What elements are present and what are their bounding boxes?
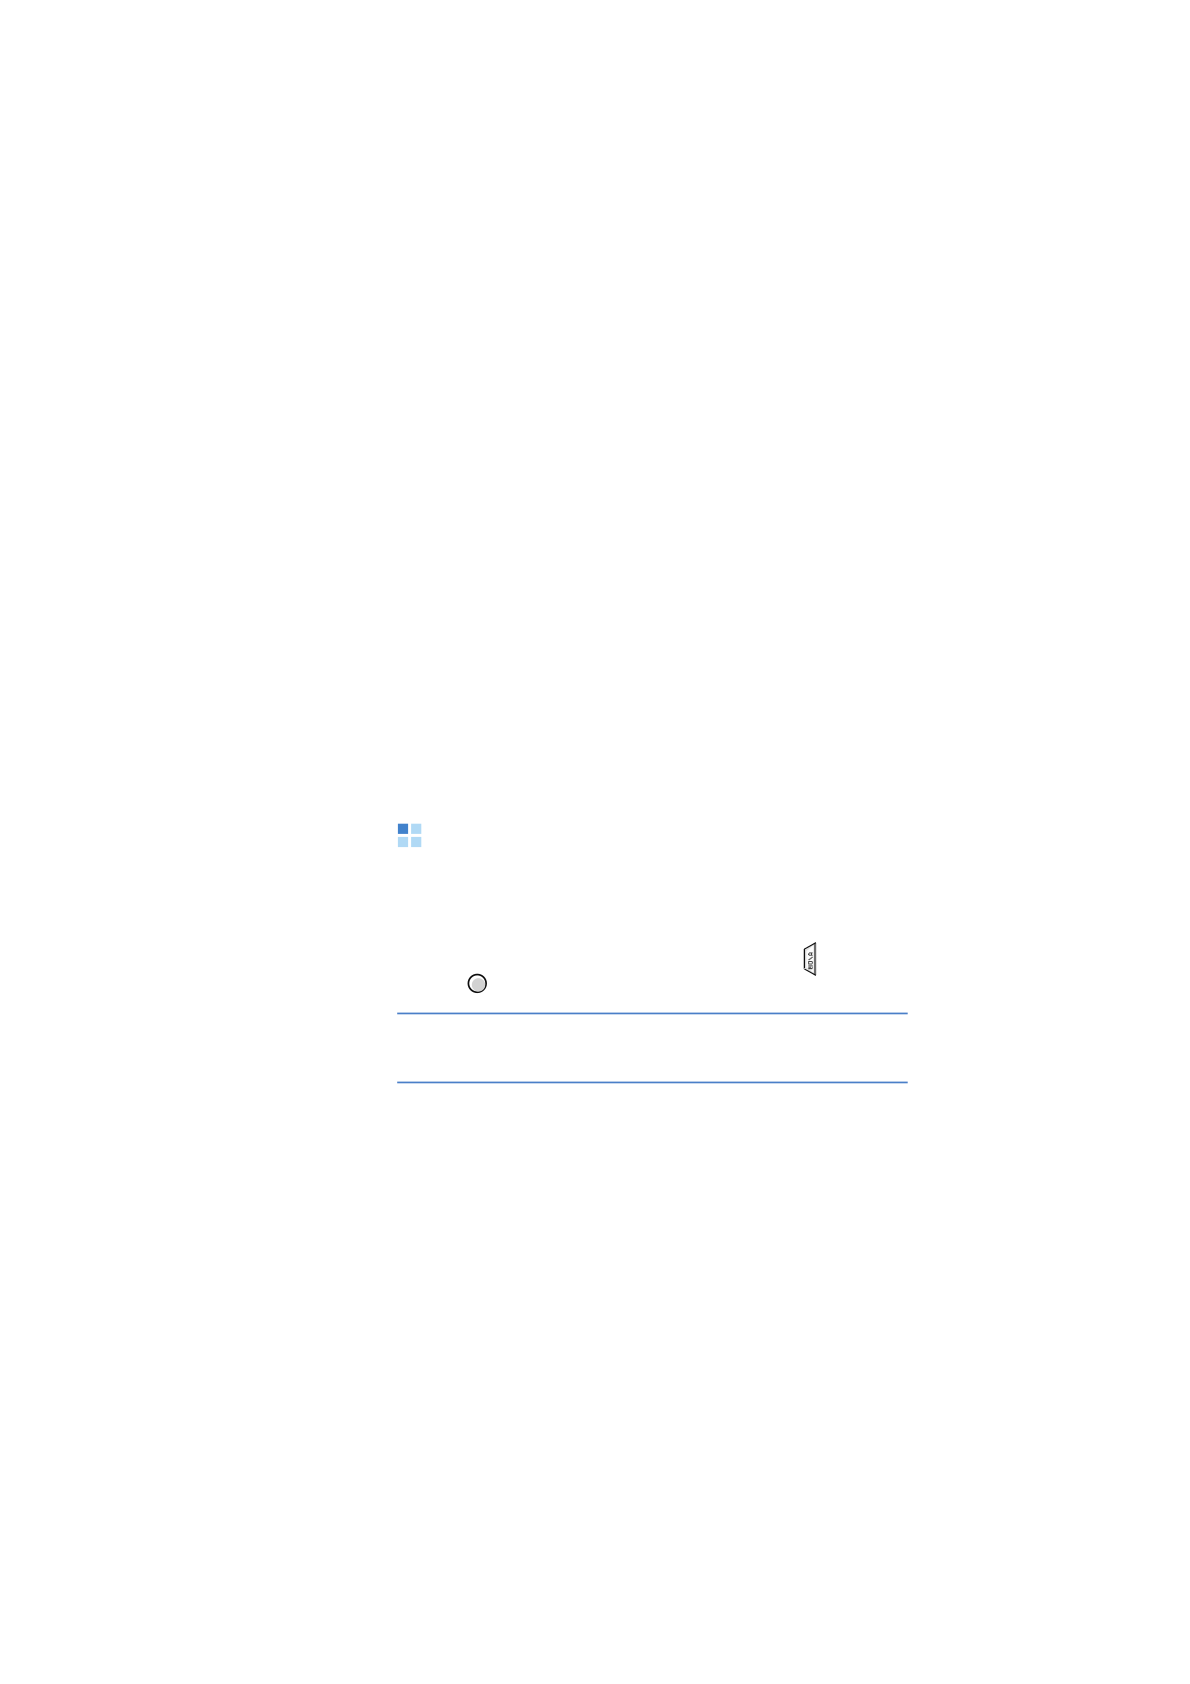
button[interactable]: Select: [465, 971, 489, 995]
button[interactable]: App grid: [398, 824, 421, 847]
button[interactable]: 3D/A: [802, 940, 818, 978]
